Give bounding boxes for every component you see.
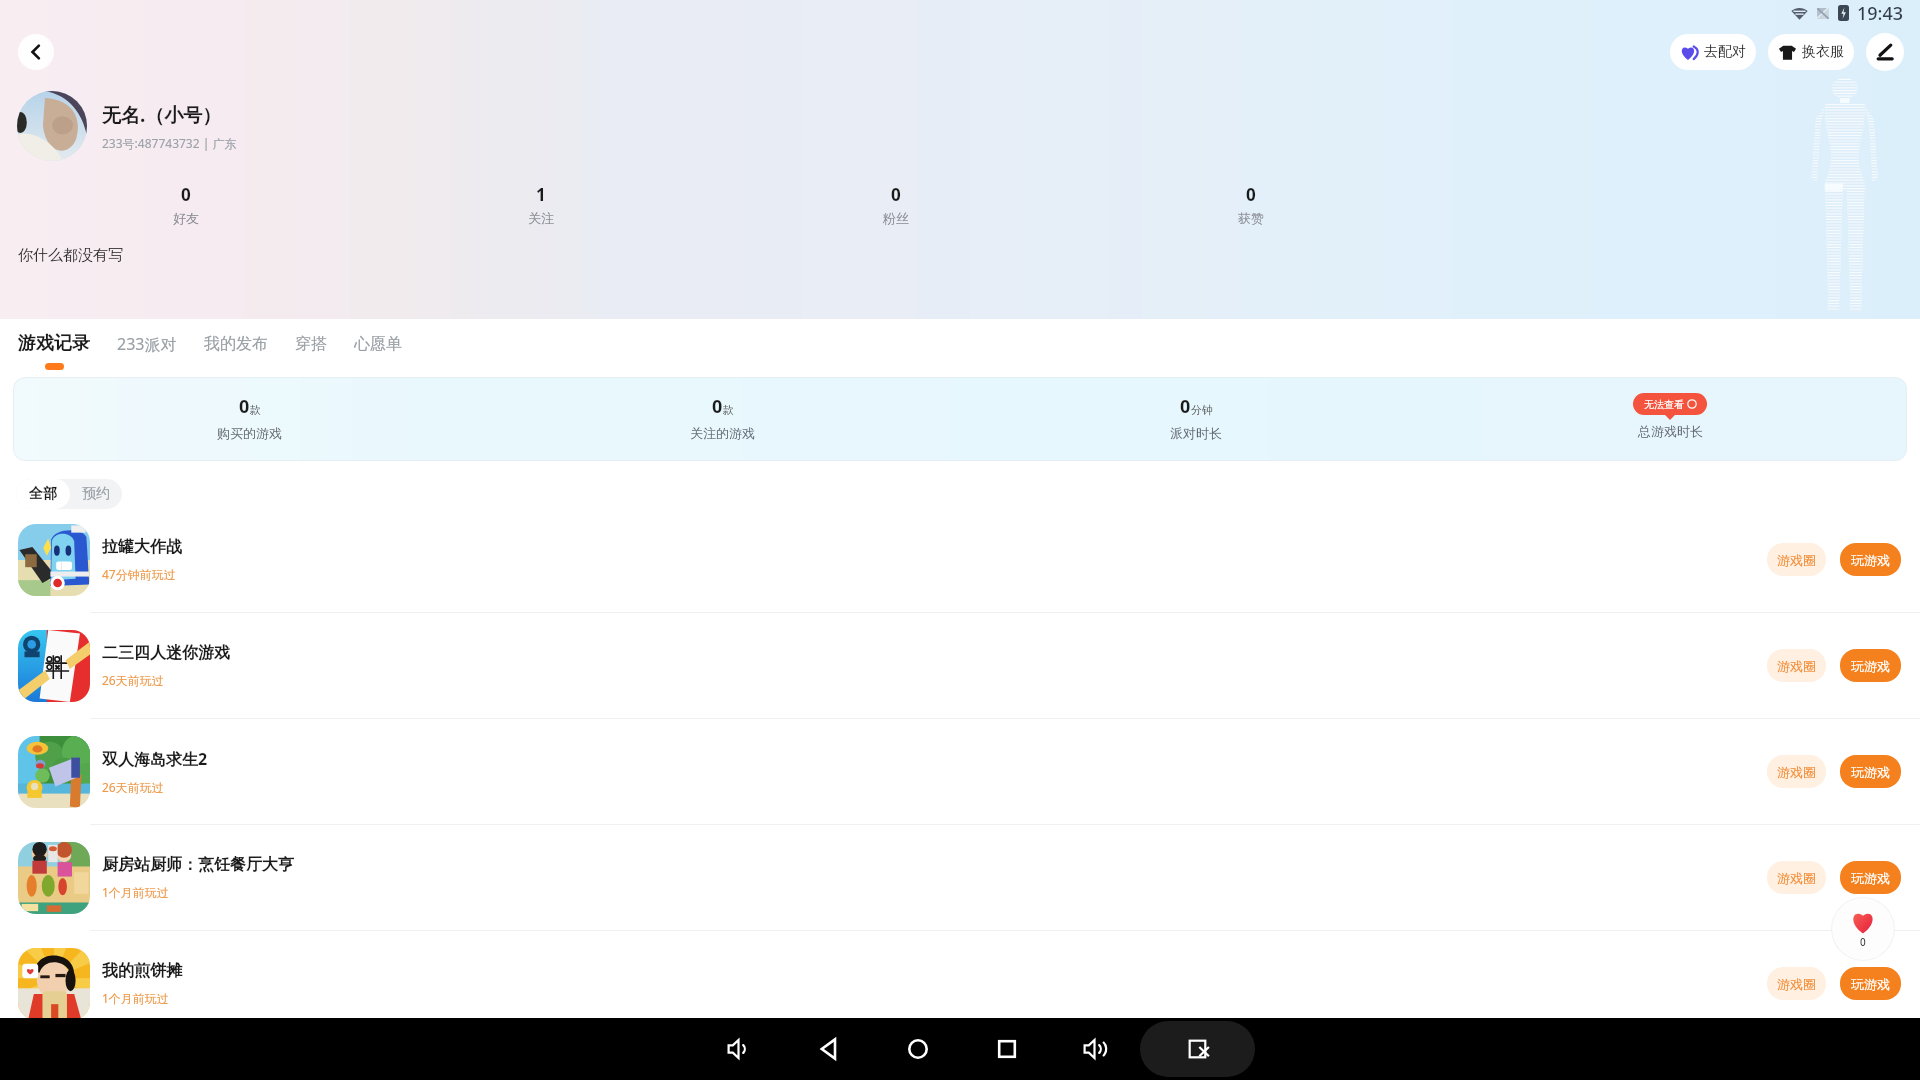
staticText: 0 xyxy=(1246,183,1256,206)
button[interactable]: 0 xyxy=(1073,183,1428,226)
button[interactable]: Avatar xyxy=(17,91,87,161)
staticText: 你什么都没有写 xyxy=(18,246,123,265)
staticText: 26天前玩过 xyxy=(102,672,164,688)
staticText: 游戏记录 xyxy=(18,332,90,355)
staticText: 233派对 xyxy=(117,333,177,355)
button[interactable]: 0 xyxy=(486,377,959,424)
staticText: 双人海岛求生2 xyxy=(102,748,208,770)
button[interactable]: 无法查看 xyxy=(1433,377,1907,423)
staticText: 总游戏时长 xyxy=(1638,423,1703,439)
button[interactable]: Screenshot xyxy=(1140,1021,1255,1077)
staticText: 拉罐大作战 xyxy=(102,537,182,557)
staticText: 获赞 xyxy=(1238,210,1264,226)
staticText: 游戏圈 xyxy=(1777,764,1816,780)
button[interactable]: 我的煎饼摊 xyxy=(0,931,1920,1036)
staticText: 0 xyxy=(891,183,901,206)
staticText: 款 xyxy=(723,403,734,417)
button[interactable]: 玩游戏 xyxy=(1840,861,1901,894)
button[interactable]: 游戏圈 xyxy=(1767,755,1826,788)
button[interactable]: Edit profile xyxy=(1866,33,1904,71)
button[interactable]: 预约 xyxy=(70,479,122,509)
staticText: 玩游戏 xyxy=(1851,976,1890,992)
staticText: 0 xyxy=(1860,935,1866,949)
staticText: 1 xyxy=(536,183,546,206)
staticText: 厨房站厨师：烹饪餐厅大亨 xyxy=(102,855,294,875)
button[interactable]: Volume down xyxy=(717,1026,763,1072)
staticText: 0 xyxy=(1180,394,1191,419)
staticText: 关注 xyxy=(528,210,554,226)
button[interactable]: Back xyxy=(806,1026,852,1072)
staticText: 玩游戏 xyxy=(1851,870,1890,886)
button[interactable]: 换衣服 xyxy=(1768,34,1854,70)
button[interactable]: 二三四人迷你游戏 xyxy=(0,613,1920,718)
staticText: 粉丝 xyxy=(883,210,909,226)
button[interactable]: 0 xyxy=(13,377,486,424)
button[interactable]: 我的发布 xyxy=(204,334,268,369)
button[interactable]: 心愿单 xyxy=(354,334,402,369)
staticText: 玩游戏 xyxy=(1851,658,1890,674)
button[interactable]: 0 xyxy=(718,183,1073,226)
staticText: 1个月前玩过 xyxy=(102,990,169,1006)
staticText: 关注的游戏 xyxy=(690,425,755,441)
button[interactable]: 双人海岛求生2 xyxy=(0,719,1920,824)
staticText: 无法查看 xyxy=(1644,398,1684,411)
staticText: 玩游戏 xyxy=(1851,764,1890,780)
staticText: 好友 xyxy=(173,210,199,226)
button[interactable]: Home xyxy=(895,1026,941,1072)
staticText: 游戏圈 xyxy=(1777,976,1816,992)
staticText: 26天前玩过 xyxy=(102,779,164,795)
staticText: 款 xyxy=(250,403,261,417)
staticText: 0 xyxy=(181,183,191,206)
button[interactable]: Recents xyxy=(984,1026,1030,1072)
button[interactable]: Back xyxy=(18,34,54,70)
staticText: 19:43 xyxy=(1857,1,1904,26)
button[interactable]: 0 xyxy=(8,183,363,226)
button[interactable]: 拉罐大作战 xyxy=(0,507,1920,612)
button[interactable]: 全部 xyxy=(16,479,70,509)
staticText: 购买的游戏 xyxy=(217,425,282,441)
staticText: 穿搭 xyxy=(295,334,327,354)
staticText: 0 xyxy=(712,394,723,419)
button[interactable]: 233派对 xyxy=(117,333,177,370)
staticText: 无名.（小号） xyxy=(102,102,222,128)
button[interactable]: 厨房站厨师：烹饪餐厅大亨 xyxy=(0,825,1920,930)
staticText: 游戏圈 xyxy=(1777,552,1816,568)
button[interactable]: 游戏圈 xyxy=(1767,543,1826,576)
staticText: 游戏圈 xyxy=(1777,870,1816,886)
staticText: 预约 xyxy=(82,485,110,503)
button[interactable]: Volume up xyxy=(1073,1026,1119,1072)
staticText: 我的发布 xyxy=(204,334,268,354)
staticText: 派对时长 xyxy=(1170,425,1222,441)
button[interactable]: 玩游戏 xyxy=(1840,649,1901,682)
staticText: 换衣服 xyxy=(1802,43,1844,61)
button[interactable]: 玩游戏 xyxy=(1840,543,1901,576)
staticText: 心愿单 xyxy=(354,334,402,354)
staticText: 1个月前玩过 xyxy=(102,884,169,900)
staticText: 233号:487743732 | 广东 xyxy=(102,135,237,151)
staticText: 全部 xyxy=(29,485,57,503)
button[interactable]: 去配对 xyxy=(1670,34,1756,70)
button[interactable]: 游戏记录 xyxy=(18,332,90,370)
button[interactable]: 游戏圈 xyxy=(1767,967,1826,1000)
button[interactable]: 1 xyxy=(363,183,718,226)
staticText: 玩游戏 xyxy=(1851,552,1890,568)
staticText: 47分钟前玩过 xyxy=(102,566,176,582)
button[interactable]: 游戏圈 xyxy=(1767,861,1826,894)
button[interactable]: 穿搭 xyxy=(295,334,327,369)
button[interactable]: 0 xyxy=(959,377,1433,424)
button[interactable]: 玩游戏 xyxy=(1840,755,1901,788)
staticText: 游戏圈 xyxy=(1777,658,1816,674)
button[interactable]: 玩游戏 xyxy=(1840,967,1901,1000)
button[interactable]: 游戏圈 xyxy=(1767,649,1826,682)
staticText: 分钟 xyxy=(1191,403,1213,417)
staticText: 我的煎饼摊 xyxy=(102,961,182,981)
button[interactable]: Like xyxy=(1832,898,1894,960)
staticText: 0 xyxy=(239,394,250,419)
staticText: 二三四人迷你游戏 xyxy=(102,643,230,663)
staticText: 去配对 xyxy=(1704,43,1746,61)
